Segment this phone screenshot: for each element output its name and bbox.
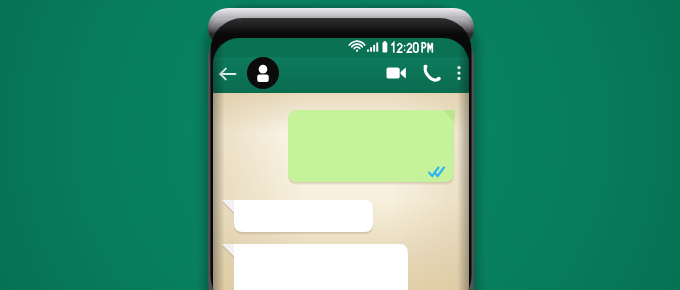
button[interactable]: Voice call — [416, 58, 448, 90]
button[interactable]: Video call — [380, 58, 414, 90]
button[interactable]: Back — [214, 60, 244, 88]
button[interactable]: More options — [448, 56, 470, 92]
button[interactable]: Contact profile — [244, 54, 282, 92]
